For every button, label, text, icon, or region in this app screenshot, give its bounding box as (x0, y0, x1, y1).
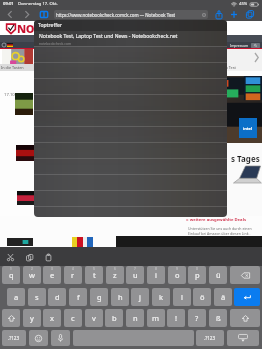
button[interactable]: Share (213, 8, 225, 21)
button[interactable] (29, 330, 48, 346)
staticText: .?123 (204, 335, 216, 341)
button[interactable]: Bookmarks (38, 8, 50, 21)
staticText: d (55, 292, 60, 302)
button[interactable] (230, 266, 260, 284)
button[interactable]: g (90, 288, 108, 306)
button[interactable] (34, 63, 227, 78)
button[interactable] (34, 47, 227, 62)
staticText: 9 (176, 267, 178, 271)
button[interactable] (34, 207, 227, 217)
staticText: a (14, 292, 19, 302)
staticText: t (93, 270, 96, 280)
staticText: NOTEB (17, 21, 53, 35)
button[interactable] (234, 288, 260, 306)
button[interactable]: i (147, 266, 165, 284)
staticText: e (50, 270, 55, 280)
button[interactable]: ö (193, 288, 211, 306)
staticText: g (97, 292, 102, 302)
staticText: y (30, 313, 34, 323)
button[interactable] (34, 143, 227, 158)
button[interactable]: Copy (23, 251, 35, 263)
button[interactable] (230, 309, 260, 327)
staticText: ü (216, 270, 221, 280)
staticText: ö (200, 292, 205, 302)
staticText: 1 (10, 267, 12, 271)
staticText: Notebook Test, Laptop Test und News - No… (39, 33, 178, 40)
button[interactable]: Cut (4, 251, 16, 263)
button[interactable] (51, 330, 70, 346)
staticText: l (181, 292, 183, 302)
button[interactable]: Back (5, 8, 15, 21)
staticText: Impressum (230, 43, 249, 48)
button[interactable]: k (152, 288, 170, 306)
staticText: https://www.notebookcheck.comck.com — No… (56, 12, 176, 18)
button[interactable]: Forward (22, 8, 32, 21)
button[interactable]: .?123 (196, 330, 224, 346)
button[interactable] (2, 309, 20, 327)
button[interactable] (227, 330, 259, 346)
button[interactable]: ? (188, 309, 206, 327)
button[interactable]: x (43, 309, 61, 327)
button[interactable]: j (131, 288, 149, 306)
button[interactable]: New Tab (228, 8, 240, 21)
staticText: n (133, 313, 138, 323)
staticText: s (35, 292, 39, 302)
button[interactable]: f (69, 288, 87, 306)
button[interactable] (34, 79, 227, 94)
button[interactable]: q (2, 266, 20, 284)
button[interactable]: b (105, 309, 123, 327)
staticText: 8 (155, 267, 157, 271)
button[interactable]: y (23, 309, 41, 327)
button[interactable] (34, 111, 227, 126)
staticText: z (113, 270, 117, 280)
button[interactable] (34, 127, 227, 142)
button[interactable]: h (111, 288, 129, 306)
button[interactable]: z (106, 266, 124, 284)
button[interactable]: e (43, 266, 61, 284)
staticText: Donnerstag 17. Okt. (18, 1, 58, 7)
button[interactable]: Show Tabs (244, 8, 256, 21)
button[interactable]: v (85, 309, 103, 327)
button[interactable]: w (23, 266, 41, 284)
button[interactable]: o (168, 266, 186, 284)
button[interactable]: Paste (42, 251, 54, 263)
staticText: Einkauf bei Amazon über diesen Link . (188, 231, 251, 236)
staticText: 0 (196, 267, 198, 271)
button[interactable]: m (147, 309, 165, 327)
button[interactable]: c (64, 309, 82, 327)
staticText: » weitere ausgewählte Deals (186, 217, 246, 223)
button[interactable]: https://www.notebookcheck.comck.com — No… (54, 10, 208, 19)
staticText: 6 (114, 267, 116, 271)
staticText: j (139, 292, 141, 302)
staticText: 17.10. (4, 92, 16, 98)
button[interactable]: r (64, 266, 82, 284)
button[interactable]: l (173, 288, 191, 306)
button[interactable]: t (85, 266, 103, 284)
button[interactable]: d (48, 288, 66, 306)
button[interactable]: s (28, 288, 46, 306)
staticText: v (92, 313, 96, 323)
button[interactable]: ! (167, 309, 185, 327)
button[interactable] (34, 159, 227, 174)
staticText: ß (216, 313, 221, 323)
button[interactable]: .?123 (2, 330, 26, 346)
staticText: Toptreffer (38, 22, 62, 29)
button[interactable] (34, 175, 227, 190)
staticText: x (50, 313, 54, 323)
button[interactable]: n (126, 309, 144, 327)
staticText: Test (45, 37, 52, 41)
button[interactable]: p (188, 266, 206, 284)
button[interactable] (34, 191, 227, 206)
staticText: 5 (93, 267, 95, 271)
button[interactable]: ü (209, 266, 227, 284)
button[interactable]: Notebook Test, Laptop Test und News - No… (34, 31, 227, 46)
staticText: 09:01 (3, 1, 14, 7)
button[interactable]: u (126, 266, 144, 284)
button[interactable]: ß (209, 309, 227, 327)
staticText: ? (195, 313, 199, 323)
staticText: 7 (134, 267, 136, 271)
button[interactable]: ä (214, 288, 232, 306)
button[interactable]: a (7, 288, 25, 306)
button[interactable] (34, 95, 227, 110)
